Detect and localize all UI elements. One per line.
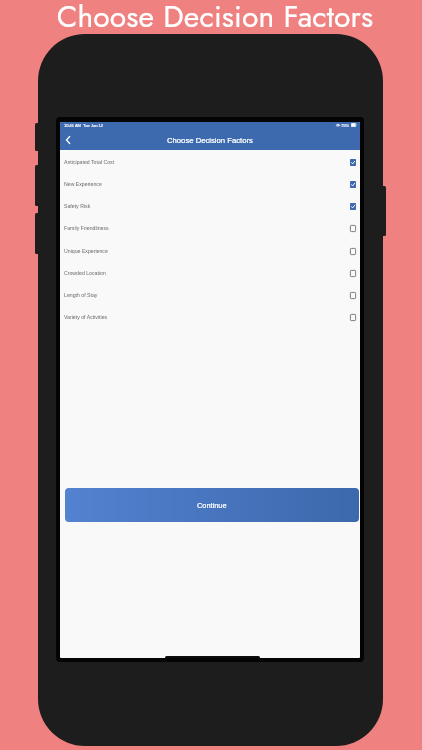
button[interactable]: Safety Risk [60, 195, 360, 217]
button[interactable]: Continue [65, 488, 359, 522]
button[interactable]: Crowded Location [60, 262, 360, 284]
button[interactable]: Back [60, 132, 75, 149]
staticText: Variety of Activities [64, 314, 108, 320]
button[interactable]: Unique Experience [60, 240, 360, 262]
staticText: Choose Decision Factors [4, 0, 422, 38]
staticText: 75% [341, 123, 350, 127]
staticText: Choose Decision Factors [167, 136, 253, 145]
button[interactable]: New Experience [60, 173, 360, 195]
staticText: Crowded Location [64, 270, 106, 276]
staticText: Anticipated Total Cost [64, 159, 115, 165]
staticText: Continue [197, 501, 227, 509]
staticText: Unique Experience [64, 248, 108, 254]
staticText: Family Friendliness [64, 225, 109, 231]
staticText: Length of Stay [64, 292, 98, 298]
button[interactable]: Variety of Activities [60, 306, 360, 328]
button[interactable]: Family Friendliness [60, 217, 360, 239]
staticText: New Experience [64, 181, 102, 187]
button[interactable]: Length of Stay [60, 284, 360, 306]
button[interactable]: Anticipated Total Cost [60, 151, 360, 173]
staticText: 10:41 AM Tue Jan 12 [64, 123, 103, 127]
staticText: Safety Risk [64, 203, 91, 209]
